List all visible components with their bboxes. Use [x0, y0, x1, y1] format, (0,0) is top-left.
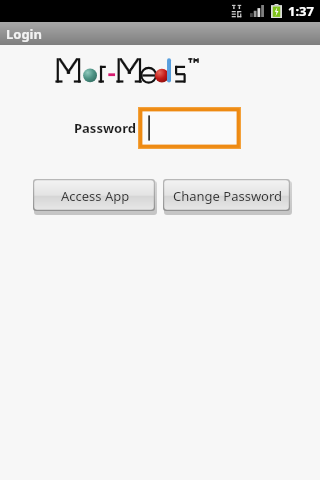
staticText: Password: [74, 119, 136, 137]
other: Signal strength: [250, 5, 264, 17]
other: Battery charging: [271, 4, 282, 18]
staticText: Login: [6, 25, 42, 43]
button[interactable]: Access App: [33, 179, 157, 214]
staticText: 1:37: [288, 2, 314, 20]
button[interactable]: Change Password: [163, 179, 292, 214]
other: 3G network: [231, 4, 243, 18]
button[interactable]: Password entry field: [138, 107, 241, 149]
staticText: Change Password: [173, 187, 283, 205]
staticText: Access App: [61, 187, 130, 205]
